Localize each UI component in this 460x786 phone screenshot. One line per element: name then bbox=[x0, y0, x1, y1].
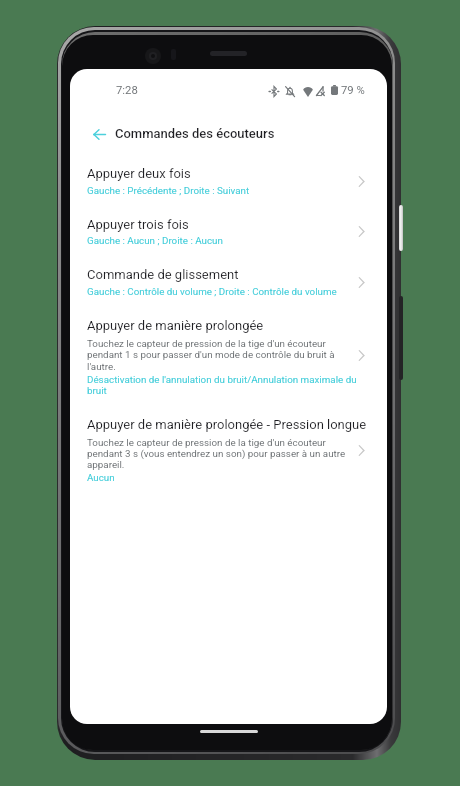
staticText: pendant 1 s pour passer d'un mode de con… bbox=[87, 349, 335, 360]
staticText: Désactivation de l'annulation du bruit/A… bbox=[87, 374, 357, 385]
staticText: 7:28 bbox=[116, 84, 138, 97]
staticText: appareil. bbox=[87, 459, 125, 470]
staticText: Appuyer trois fois bbox=[87, 217, 189, 232]
staticText: Gauche : Contrôle du volume ; Droite : C… bbox=[87, 286, 337, 297]
button[interactable] bbox=[70, 209, 387, 258]
staticText: Gauche : Aucun ; Droite : Aucun bbox=[87, 235, 223, 246]
staticText: Aucun bbox=[87, 472, 115, 483]
staticText: Appuyer deux fois bbox=[87, 166, 191, 181]
button[interactable] bbox=[70, 259, 387, 308]
staticText: l'autre. bbox=[87, 361, 116, 372]
staticText: Appuyer de manière prolongée bbox=[87, 318, 264, 333]
staticText: pendant 3 s (vous entendrez un son) pour… bbox=[87, 448, 346, 459]
staticText: Gauche : Précédente ; Droite : Suivant bbox=[87, 185, 250, 196]
button[interactable] bbox=[70, 159, 387, 208]
staticText: Commandes des écouteurs bbox=[115, 126, 275, 141]
button[interactable] bbox=[70, 405, 387, 492]
button[interactable] bbox=[70, 309, 387, 404]
staticText: bruit bbox=[87, 385, 107, 396]
staticText: Commande de glissement bbox=[87, 267, 239, 282]
staticText: Appuyer de manière prolongée - Pression … bbox=[87, 417, 367, 432]
staticText: Touchez le capteur de pression de la tig… bbox=[87, 338, 326, 349]
staticText: Touchez le capteur de pression de la tig… bbox=[87, 437, 326, 448]
button[interactable]: Retour bbox=[86, 121, 113, 147]
staticText: 79 % bbox=[341, 84, 365, 97]
